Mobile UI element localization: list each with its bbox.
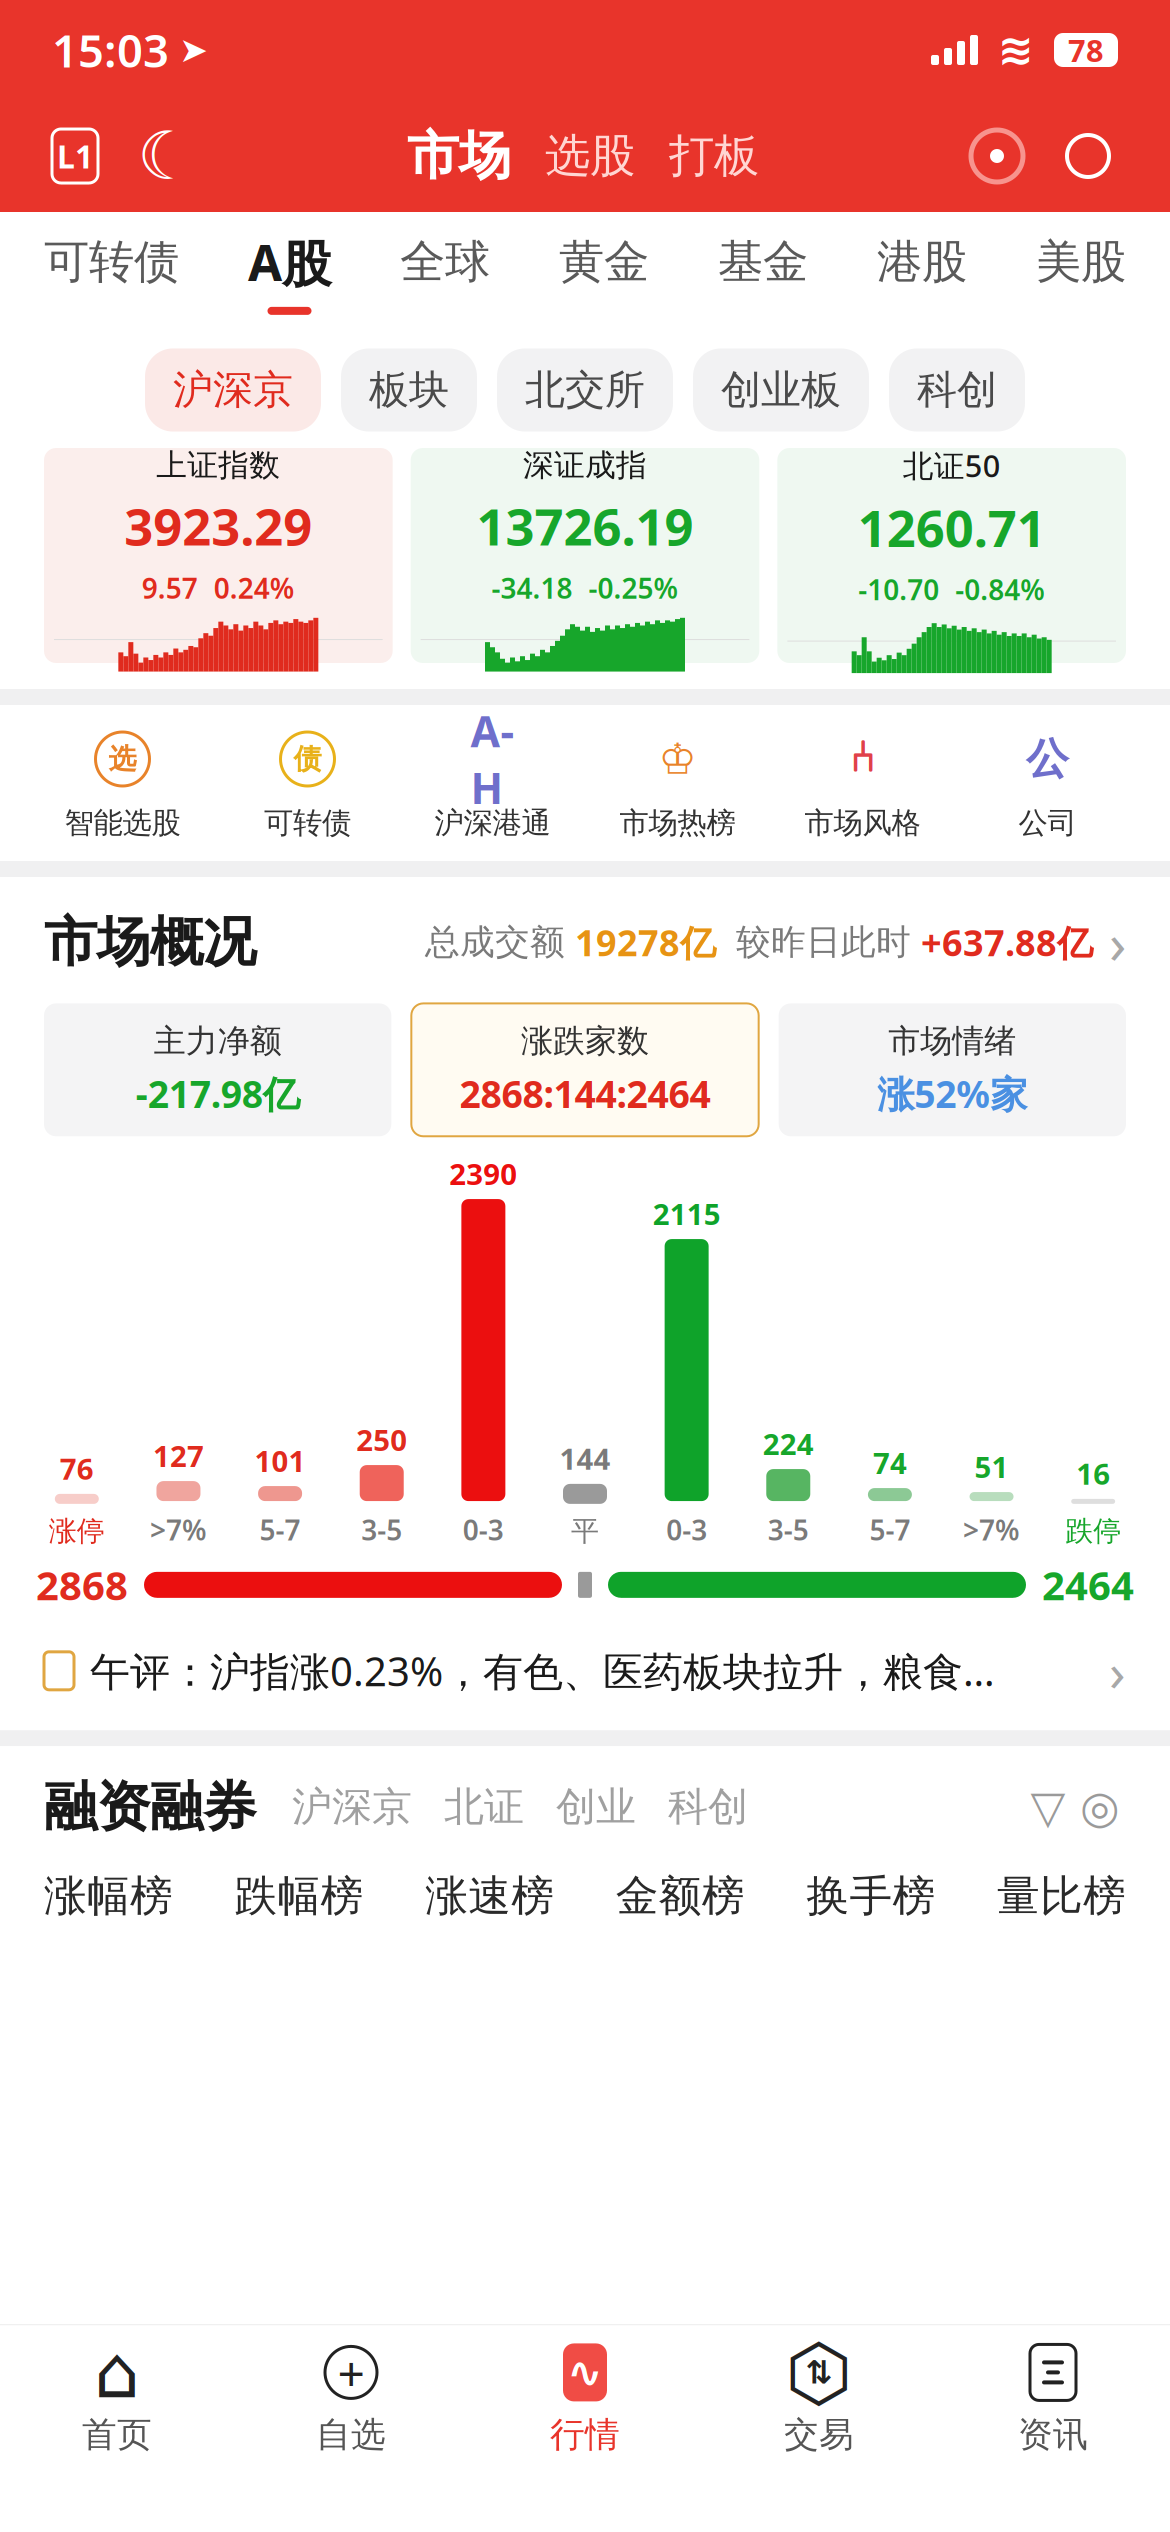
button[interactable]: 科创: [668, 1782, 748, 1831]
button[interactable]: 选: [30, 729, 215, 841]
button[interactable]: 黄金: [559, 234, 649, 310]
button[interactable]: ∿: [468, 2343, 702, 2456]
staticText: ♔: [658, 735, 696, 783]
staticText: 2868: [36, 1558, 128, 1611]
staticText: -0.25%: [588, 569, 678, 607]
button[interactable]: 板块: [341, 348, 477, 431]
button[interactable]: Settings: [1074, 1781, 1126, 1833]
button[interactable]: ⬡: [702, 2343, 936, 2456]
button[interactable]: ⑃: [770, 729, 955, 841]
button[interactable]: 市场概况: [0, 877, 1170, 979]
button[interactable]: 午评：沪指涨0.23%，有色、医药板块拉升，粮食…: [0, 1611, 1170, 1730]
staticText: ∿: [567, 2348, 603, 2397]
button[interactable]: 可转债: [44, 234, 179, 310]
staticText: ⌂: [94, 2332, 140, 2413]
staticText: 全球: [400, 234, 490, 290]
button[interactable]: 跌幅榜: [235, 1870, 364, 1922]
staticText: ➤: [179, 30, 208, 70]
staticText: 沪深京: [292, 1782, 412, 1831]
button[interactable]: Night mode: [134, 123, 200, 189]
button[interactable]: 金额榜: [616, 1870, 745, 1922]
staticText: 深证成指: [523, 446, 647, 484]
staticText: 16: [1076, 1454, 1110, 1493]
staticText: +: [337, 2340, 364, 2404]
button[interactable]: Search: [1058, 126, 1118, 186]
staticText: 交易: [784, 2413, 854, 2456]
staticText: 选: [108, 742, 136, 776]
staticText: 较昨日此时: [736, 921, 911, 963]
button[interactable]: 港股: [877, 234, 967, 310]
staticText: -0.84%: [955, 571, 1045, 608]
button[interactable]: 主力净额: [44, 1003, 391, 1136]
button[interactable]: 北交所: [497, 348, 673, 431]
button[interactable]: ♔: [585, 729, 770, 841]
staticText: 午评：沪指涨0.23%，有色、医药板块拉升，粮食…: [90, 1644, 995, 1697]
staticText: ⇅: [805, 2354, 832, 2391]
staticText: AH: [470, 702, 514, 816]
button[interactable]: 美股: [1036, 234, 1126, 310]
staticText: -34.18: [491, 569, 572, 607]
button[interactable]: 深证成指: [411, 448, 759, 663]
staticText: >7%: [150, 1511, 207, 1548]
button[interactable]: 公: [955, 729, 1140, 841]
staticText: ≋: [998, 26, 1034, 74]
button[interactable]: 涨跌家数: [411, 1003, 759, 1136]
button[interactable]: 市场情绪: [779, 1003, 1126, 1136]
staticText: 15:03: [52, 20, 169, 80]
staticText: 美股: [1036, 234, 1126, 290]
staticText: 涨幅榜: [44, 1870, 173, 1922]
staticText: 选股: [545, 128, 635, 184]
staticText: 2868:144:2464: [459, 1069, 710, 1118]
staticText: 127: [153, 1436, 204, 1475]
staticText: 金额榜: [616, 1870, 745, 1922]
staticText: +637.88亿: [921, 918, 1093, 966]
button[interactable]: 基金: [718, 234, 808, 310]
button[interactable]: 北证: [444, 1782, 524, 1831]
staticText: 基金: [718, 234, 808, 290]
staticText: 打板: [669, 128, 759, 184]
button[interactable]: 沪深京: [292, 1782, 412, 1831]
button[interactable]: Alerts: [966, 124, 1028, 188]
staticText: 涨跌家数: [521, 1021, 649, 1061]
staticText: 科创: [917, 365, 997, 414]
button[interactable]: 涨幅榜: [44, 1870, 173, 1922]
button[interactable]: ⌂: [0, 2343, 234, 2456]
button[interactable]: 上证指数: [44, 448, 393, 663]
button[interactable]: 北证50: [777, 448, 1126, 663]
staticText: 涨52%家: [877, 1069, 1027, 1118]
staticText: 可转债: [264, 805, 351, 841]
staticText: 0-3: [666, 1511, 707, 1548]
staticText: >7%: [963, 1511, 1020, 1548]
button[interactable]: 创业: [556, 1782, 636, 1831]
button[interactable]: 换手榜: [806, 1870, 935, 1922]
staticText: 市场情绪: [888, 1021, 1016, 1061]
staticText: -10.70: [858, 571, 939, 608]
button[interactable]: 市场: [407, 124, 511, 188]
button[interactable]: 沪深京: [145, 348, 321, 431]
staticText: 沪深京: [173, 365, 293, 414]
button[interactable]: 量比榜: [997, 1870, 1126, 1922]
staticText: 3-5: [361, 1511, 402, 1548]
button[interactable]: 选股: [545, 128, 635, 184]
staticText: 0-3: [463, 1511, 504, 1548]
button[interactable]: 创业板: [693, 348, 869, 431]
staticText: 首页: [82, 2413, 152, 2456]
staticText: 换手榜: [806, 1870, 935, 1922]
button[interactable]: 涨速榜: [425, 1870, 554, 1922]
staticText: 科创: [668, 1782, 748, 1831]
button[interactable]: 债: [215, 729, 400, 841]
staticText: -217.98亿: [136, 1069, 300, 1118]
button[interactable]: 全球: [400, 234, 490, 310]
staticText: 债: [293, 742, 321, 776]
staticText: 总成交额: [425, 921, 565, 963]
button[interactable]: 打板: [669, 128, 759, 184]
button[interactable]: Level 1 quotes: [52, 129, 98, 183]
button[interactable]: +: [234, 2343, 468, 2456]
staticText: ›: [1109, 905, 1126, 979]
button[interactable]: 科创: [889, 348, 1025, 431]
button[interactable]: AH: [400, 729, 585, 841]
staticText: 平: [571, 1514, 599, 1548]
button[interactable]: A股: [248, 229, 331, 315]
button[interactable]: Filter: [1022, 1781, 1074, 1833]
button[interactable]: 资讯: [936, 2343, 1170, 2456]
